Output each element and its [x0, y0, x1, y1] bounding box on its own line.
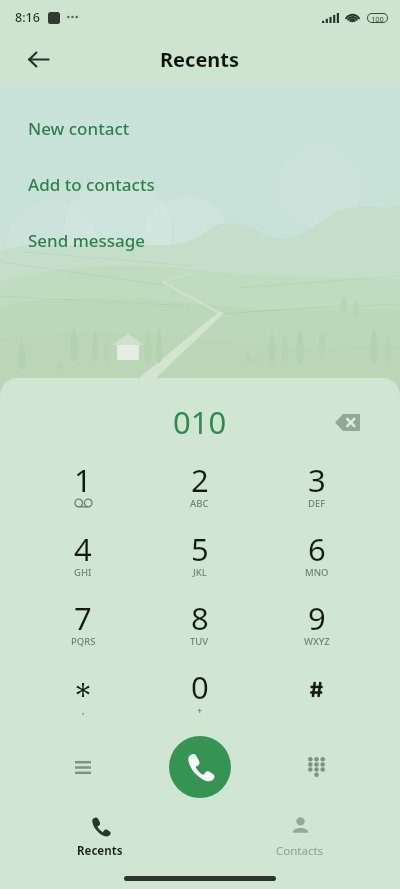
staticText: , [82, 704, 85, 717]
button[interactable]: 4 [25, 523, 141, 592]
staticText: Recents [77, 843, 123, 859]
button[interactable]: 5 [141, 523, 258, 592]
staticText: 3 [308, 459, 326, 501]
button[interactable]: 7 [25, 592, 141, 661]
button[interactable]: 3 [258, 454, 375, 523]
button[interactable]: Call log menu [25, 727, 141, 807]
staticText: MNO [305, 566, 329, 579]
button[interactable]: 9 [258, 592, 375, 661]
staticText: DEF [308, 497, 326, 510]
staticText: 5 [191, 528, 209, 570]
staticText: PQRS [71, 635, 96, 648]
staticText: 8:16 [15, 9, 40, 26]
button[interactable]: Back [18, 39, 58, 79]
button[interactable]: Call [169, 736, 231, 798]
staticText: Send message [28, 229, 146, 252]
staticText: Add to contacts [28, 173, 155, 196]
staticText: JKL [193, 566, 207, 579]
button[interactable]: Keypad [258, 727, 375, 807]
button[interactable]: 8 [141, 592, 258, 661]
button[interactable]: Backspace [329, 404, 365, 440]
staticText: ABC [190, 497, 209, 510]
staticText: GHI [74, 566, 92, 579]
staticText: 2 [191, 459, 209, 501]
staticText: 4 [74, 528, 92, 570]
staticText: 8 [191, 597, 209, 639]
staticText: 100 [371, 14, 384, 22]
button[interactable]: 1 [25, 454, 141, 523]
button[interactable]: 0 [141, 661, 258, 730]
staticText: WXYZ [304, 635, 330, 648]
button[interactable]: Contacts [200, 806, 400, 864]
button[interactable]: , [25, 661, 141, 730]
staticText: 6 [308, 528, 326, 570]
button[interactable] [258, 661, 375, 730]
staticText: Recents [160, 46, 240, 73]
staticText: + [197, 704, 203, 717]
staticText: Contacts [276, 843, 324, 859]
button[interactable]: New contact [0, 100, 400, 156]
button[interactable]: 6 [258, 523, 375, 592]
staticText: TUV [190, 635, 209, 648]
button[interactable]: Add to contacts [0, 156, 400, 212]
staticText: 010 [173, 401, 227, 443]
staticText: 0 [191, 666, 209, 708]
staticText: New contact [28, 117, 130, 140]
button[interactable]: 2 [141, 454, 258, 523]
button[interactable]: Recents [0, 806, 200, 864]
staticText: 1 [74, 459, 92, 501]
button[interactable]: Send message [0, 212, 400, 268]
staticText: 9 [308, 597, 326, 639]
staticText: 7 [74, 597, 92, 639]
